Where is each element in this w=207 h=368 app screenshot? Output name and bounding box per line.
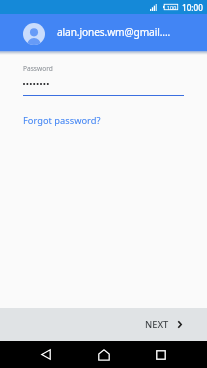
- button[interactable]: Back: [32, 341, 60, 368]
- staticText: 100: [167, 4, 177, 10]
- staticText: 10:00: [182, 2, 203, 13]
- staticText: alan.jones.wm@gmail....: [57, 25, 171, 39]
- staticText: Forgot password?: [23, 114, 101, 127]
- button[interactable]: NEXT: [131, 312, 207, 337]
- button[interactable]: alan.jones.wm@gmail....: [0, 14, 207, 51]
- staticText: NEXT: [145, 318, 169, 331]
- button[interactable]: Home: [90, 341, 118, 368]
- button[interactable]: Recent apps: [147, 341, 175, 368]
- staticText: Password: [23, 64, 53, 73]
- button[interactable]: Password: [0, 64, 207, 96]
- button[interactable]: Forgot password?: [23, 114, 101, 127]
